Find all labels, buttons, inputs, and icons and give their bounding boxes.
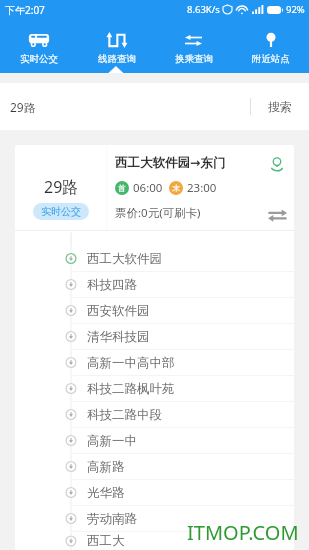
staticText: 92% [286, 3, 305, 16]
staticText: 高新一中 [87, 433, 137, 449]
button[interactable]: 劳动南路 [15, 506, 294, 531]
staticText: 清华科技园 [87, 329, 150, 345]
staticText: 西工大软件园→东门 [115, 155, 226, 171]
staticText: ITMOP.COM [187, 519, 299, 546]
staticText: 29路 [44, 176, 79, 198]
button[interactable]: 换乘查询 [155, 32, 232, 65]
staticText: 附近站点 [252, 53, 290, 65]
staticText: 劳动南路 [87, 511, 137, 527]
staticText: 下午2:07 [5, 3, 45, 17]
button[interactable]: Reverse direction [266, 204, 288, 226]
staticText: 搜索 [268, 99, 292, 114]
staticText: 23:00 [187, 180, 217, 196]
button[interactable]: 线路查询 [78, 32, 155, 65]
staticText: 科技四路 [87, 277, 137, 293]
staticText: 线路查询 [98, 53, 136, 65]
button[interactable]: 光华路 [15, 480, 294, 505]
staticText: 首 [118, 183, 126, 193]
staticText: 光华路 [87, 485, 125, 501]
staticText: 西工大软件园 [87, 251, 162, 267]
staticText: 西安软件园 [87, 303, 150, 319]
staticText: 末 [172, 183, 180, 193]
staticText: 29路 [10, 99, 250, 115]
staticText: 科技二路中段 [87, 407, 162, 423]
button[interactable]: 西安软件园 [15, 298, 294, 323]
button[interactable]: 高新一中高中部 [15, 350, 294, 375]
staticText: 实时公交 [41, 205, 81, 218]
button[interactable]: 西工大 [15, 532, 294, 550]
button[interactable]: 西工大软件园 [15, 246, 294, 271]
button[interactable]: 科技四路 [15, 272, 294, 297]
staticText: 实时公交 [20, 53, 58, 65]
button[interactable]: 搜索 [251, 83, 309, 130]
staticText: 高新路 [87, 459, 125, 475]
button[interactable]: 科技二路中段 [15, 402, 294, 427]
staticText: 换乘查询 [175, 53, 213, 65]
staticText: 西工大 [87, 533, 125, 549]
staticText: 科技二路枫叶苑 [87, 381, 175, 397]
staticText: 票价:0元(可刷卡) [115, 205, 201, 221]
button[interactable]: 高新路 [15, 454, 294, 479]
button[interactable]: 清华科技园 [15, 324, 294, 349]
staticText: 8.63K/s [187, 3, 220, 16]
button[interactable]: 附近站点 [232, 32, 309, 65]
staticText: 06:00 [133, 180, 163, 196]
button[interactable]: 实时公交 [0, 32, 78, 65]
staticText: 高新一中高中部 [87, 355, 175, 371]
button[interactable]: View on map [267, 154, 287, 174]
button[interactable]: 高新一中 [15, 428, 294, 453]
button[interactable]: 科技二路枫叶苑 [15, 376, 294, 401]
